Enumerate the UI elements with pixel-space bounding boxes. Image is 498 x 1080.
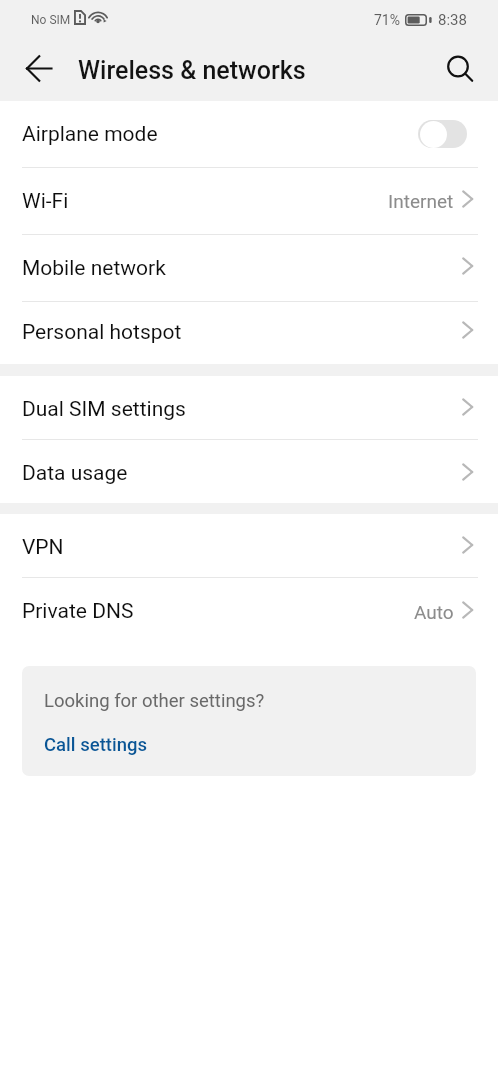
staticText: Wireless & networks xyxy=(78,56,306,85)
staticText: Auto xyxy=(414,601,454,623)
button[interactable]: Dual SIM settings xyxy=(0,376,498,442)
button[interactable]: VPN xyxy=(0,514,498,580)
button[interactable]: Airplane mode xyxy=(418,119,476,149)
staticText: Looking for other settings? xyxy=(44,690,265,712)
staticText: VPN xyxy=(22,535,64,560)
button[interactable]: Personal hotspot xyxy=(0,302,498,362)
button[interactable]: Search xyxy=(437,47,484,94)
staticText: Airplane mode xyxy=(22,122,158,147)
button[interactable]: Private DNS xyxy=(0,579,498,644)
button[interactable]: Back xyxy=(15,47,62,94)
button[interactable]: Mobile network xyxy=(0,235,498,301)
staticText: 8:38 xyxy=(438,11,467,29)
button[interactable]: Looking for other settings? xyxy=(22,666,476,776)
staticText: No SIM xyxy=(31,13,71,27)
button[interactable]: Airplane mode xyxy=(0,101,498,167)
staticText: Internet xyxy=(388,190,454,212)
staticText: Mobile network xyxy=(22,256,166,281)
button[interactable]: Wi-Fi xyxy=(0,168,498,234)
button[interactable]: Data usage xyxy=(0,441,498,506)
staticText: Private DNS xyxy=(22,599,134,624)
staticText: 71% xyxy=(374,12,400,28)
staticText: Data usage xyxy=(22,461,128,486)
staticText: Dual SIM settings xyxy=(22,397,186,422)
staticText: Personal hotspot xyxy=(22,320,182,345)
staticText: Call settings xyxy=(44,734,148,756)
staticText: Wi-Fi xyxy=(22,189,69,214)
